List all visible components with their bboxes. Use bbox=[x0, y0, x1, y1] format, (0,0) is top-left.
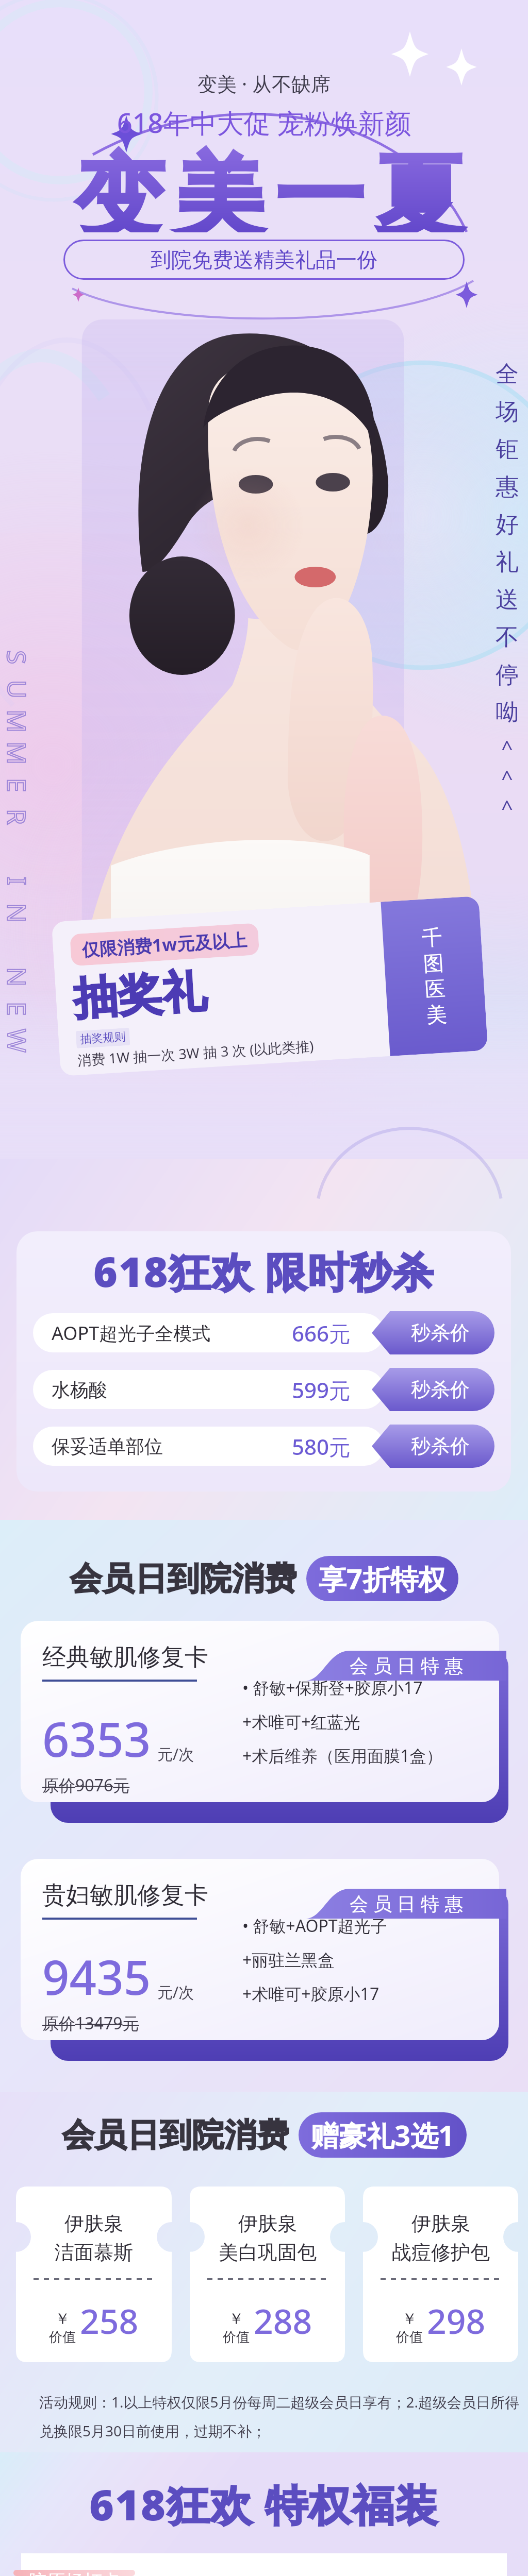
button[interactable]: 伊肤泉 bbox=[190, 2187, 345, 2362]
staticText: ^ bbox=[501, 764, 513, 791]
staticText: 原价13479元 bbox=[42, 2012, 139, 2035]
staticText: 不 bbox=[496, 623, 519, 652]
button[interactable]: 胶原畅打卡 bbox=[21, 2553, 507, 2576]
staticText: W bbox=[3, 1029, 35, 1053]
button[interactable]: 秒杀价 bbox=[372, 1311, 494, 1354]
staticText: 洁面慕斯 bbox=[55, 2240, 133, 2265]
staticText: 兑换限5月30日前使用，过期不补； bbox=[39, 2421, 267, 2441]
staticText: 美白巩固包 bbox=[219, 2240, 317, 2265]
button[interactable]: AOPT超光子全模式 bbox=[33, 1313, 384, 1352]
staticText: M bbox=[3, 709, 35, 733]
staticText: +丽驻兰黑盒 bbox=[242, 1948, 335, 1971]
staticText: 水杨酸 bbox=[52, 1378, 107, 1401]
button[interactable]: 经典敏肌修复卡 bbox=[21, 1621, 499, 1802]
staticText: E bbox=[3, 1002, 35, 1016]
staticText: 会员日特惠 bbox=[347, 1892, 466, 1916]
staticText: +术后维养（医用面膜1盒） bbox=[242, 1744, 443, 1767]
staticText: • 舒敏+AOPT超光子 bbox=[242, 1914, 387, 1937]
staticText: 618年中大促 宠粉焕新颜 bbox=[117, 104, 411, 141]
staticText: 场 bbox=[496, 397, 519, 427]
staticText: 伊肤泉 bbox=[64, 2211, 123, 2236]
staticText: 618狂欢 限时秒杀 bbox=[93, 1243, 435, 1299]
staticText: 伊肤泉 bbox=[238, 2211, 297, 2236]
staticText: +术唯可+胶原小17 bbox=[242, 1982, 379, 2005]
staticText: • 舒敏+保斯登+胶原小17 bbox=[242, 1676, 423, 1699]
staticText: 经典敏肌修复卡 bbox=[42, 1642, 208, 1672]
staticText: 全 bbox=[496, 360, 519, 389]
staticText: 价值 bbox=[223, 2329, 250, 2346]
staticText: ￥ bbox=[228, 2309, 244, 2329]
staticText: 贵妇敏肌修复卡 bbox=[42, 1880, 208, 1910]
staticText: U bbox=[3, 680, 35, 699]
staticText: 活动规则：1.以上特权仅限5月份每周二超级会员日享有；2.超级会员日所得 bbox=[39, 2392, 520, 2412]
staticText: 千 bbox=[421, 924, 443, 951]
staticText: N bbox=[3, 903, 35, 923]
staticText: 胶原畅打卡 bbox=[28, 2570, 121, 2576]
button[interactable]: 秒杀价 bbox=[372, 1425, 494, 1468]
staticText: N bbox=[3, 967, 35, 987]
staticText: 消费 1W 抽一次 3W 抽 3 次 (以此类推) bbox=[77, 1036, 314, 1070]
button[interactable]: 到院免费送精美礼品一份 bbox=[63, 240, 465, 280]
staticText: M bbox=[3, 741, 35, 765]
staticText: 礼 bbox=[496, 548, 519, 577]
button[interactable]: 伊肤泉 bbox=[16, 2187, 172, 2362]
staticText: R bbox=[3, 809, 35, 825]
staticText: 呦 bbox=[496, 698, 519, 727]
staticText: 580元 bbox=[292, 1432, 351, 1461]
staticText: 元/次 bbox=[157, 1743, 194, 1765]
staticText: 抽奖规则 bbox=[80, 1030, 126, 1047]
staticText: 会员日到院消费 bbox=[62, 2115, 289, 2155]
staticText: S bbox=[3, 650, 35, 665]
staticText: 变美 · 从不缺席 bbox=[197, 70, 331, 97]
staticText: 秒杀价 bbox=[411, 1320, 470, 1345]
staticText: 618狂欢 特权福装 bbox=[89, 2475, 439, 2533]
staticText: 会员日特惠 bbox=[347, 1654, 466, 1677]
staticText: 惠 bbox=[496, 472, 519, 502]
staticText: 抽奖礼 bbox=[72, 963, 208, 1027]
button[interactable]: 贵妇敏肌修复卡 bbox=[21, 1859, 499, 2040]
staticText: 到院免费送精美礼品一份 bbox=[151, 247, 377, 273]
staticText: 6353 bbox=[42, 1706, 151, 1771]
staticText: ^ bbox=[501, 734, 513, 761]
button[interactable]: 赠豪礼3选1 bbox=[299, 2112, 467, 2158]
staticText: ￥ bbox=[55, 2309, 70, 2329]
staticText: 9435 bbox=[42, 1944, 151, 2009]
staticText: 享7折特权 bbox=[319, 1560, 446, 1598]
staticText: 288 bbox=[254, 2297, 312, 2344]
staticText: 666元 bbox=[292, 1318, 351, 1348]
staticText: 会员日到院消费 bbox=[70, 1558, 297, 1599]
staticText: 原价9076元 bbox=[42, 1774, 130, 1797]
button[interactable]: 伊肤泉 bbox=[363, 2187, 518, 2362]
staticText: 图 bbox=[423, 950, 445, 977]
staticText: 停 bbox=[496, 660, 519, 690]
staticText: 元/次 bbox=[157, 1981, 194, 2003]
staticText: I bbox=[3, 877, 35, 885]
button[interactable]: 保妥适单部位 bbox=[33, 1427, 384, 1466]
button[interactable]: 享7折特权 bbox=[306, 1556, 458, 1601]
staticText: 价值 bbox=[49, 2329, 76, 2346]
staticText: 好 bbox=[496, 510, 519, 539]
button[interactable]: 仅限消费1w元及以上 bbox=[51, 896, 488, 1076]
staticText: 258 bbox=[80, 2297, 139, 2344]
staticText: +术唯可+红蓝光 bbox=[242, 1710, 360, 1733]
staticText: 送 bbox=[496, 585, 519, 615]
staticText: 变美一夏 bbox=[70, 142, 470, 232]
staticText: 赠豪礼3选1 bbox=[311, 2116, 454, 2154]
staticText: ^ bbox=[501, 793, 513, 821]
staticText: 美 bbox=[426, 1001, 448, 1028]
staticText: 保妥适单部位 bbox=[52, 1435, 163, 1458]
staticText: E bbox=[3, 778, 35, 792]
staticText: 仅限消费1w元及以上 bbox=[81, 928, 248, 961]
button[interactable]: 秒杀价 bbox=[372, 1368, 494, 1411]
staticText: 战痘修护包 bbox=[392, 2240, 490, 2265]
staticText: 秒杀价 bbox=[411, 1377, 470, 1402]
staticText: 伊肤泉 bbox=[411, 2211, 470, 2236]
staticText: 价值 bbox=[396, 2329, 423, 2346]
staticText: 599元 bbox=[292, 1375, 351, 1404]
staticText: 秒杀价 bbox=[411, 1434, 470, 1459]
staticText: ￥ bbox=[402, 2309, 417, 2329]
staticText: 298 bbox=[427, 2297, 486, 2344]
staticText: AOPT超光子全模式 bbox=[52, 1320, 211, 1346]
staticText: 钜 bbox=[496, 435, 519, 464]
button[interactable]: 水杨酸 bbox=[33, 1370, 384, 1409]
